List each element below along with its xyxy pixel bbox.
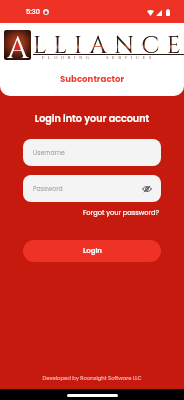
staticText: 5:30 [26, 7, 40, 16]
button[interactable]: Forgot your password? [77, 205, 165, 220]
staticText: Username [33, 148, 65, 157]
staticText: Login into your account [0, 112, 184, 125]
button[interactable]: Password [23, 175, 161, 202]
button[interactable]: Username [23, 139, 161, 166]
staticText: Forgot your password? [83, 208, 160, 217]
staticText: A [7, 30, 29, 59]
staticText: FLOORING SERVICES [42, 55, 155, 60]
button[interactable]: Show password [137, 179, 157, 199]
staticText: Developed by Roonsight Software LLC [0, 374, 184, 381]
staticText: Subcontractor [60, 73, 125, 85]
staticText: LLIANCE [33, 30, 184, 62]
staticText: Login [83, 246, 102, 256]
staticText: Password [33, 184, 63, 193]
button[interactable]: Login [23, 240, 161, 262]
